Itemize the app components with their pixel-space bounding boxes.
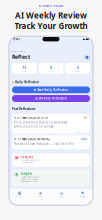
staticText: You felt prompted needing for (21, 176, 40, 178)
staticText: without burnout on Sunday. (14, 125, 54, 128)
button[interactable]: 21 Mar 2026 at 9:15 (12, 114, 90, 133)
staticText: Start Daily Reflection (37, 88, 68, 92)
staticText: Profile (80, 196, 85, 198)
staticText: Reflect (12, 53, 30, 60)
staticText: Day streak (47, 70, 55, 72)
button[interactable]: Patterns (12, 153, 90, 167)
staticText: MONDAY, 21 MARCH (12, 51, 25, 52)
staticText: Past Reflections (12, 107, 35, 111)
staticText: This week I had that push — I still feel… (14, 142, 74, 146)
staticText: Daily (84, 117, 87, 118)
staticText: 17 Mar 2026 at 08:02 (17, 137, 50, 141)
staticText: 11 (22, 65, 26, 70)
button[interactable]: Profile (72, 191, 93, 198)
staticText: Weekly (82, 138, 87, 140)
button[interactable]: 11 (12, 63, 37, 74)
button[interactable]: 17 Mar 2026 at 08:02 (12, 135, 90, 149)
staticText: Insights (75, 70, 80, 72)
staticText: 2 tags (82, 131, 86, 133)
staticText: didn't explain to your week. (21, 181, 38, 182)
staticText: 5 (50, 65, 52, 70)
staticText: Personal breaths. (21, 162, 34, 163)
staticText: Insights (21, 172, 32, 175)
staticText: Insights (58, 196, 64, 198)
staticText: 9:41 (13, 37, 20, 41)
staticText: 3 moods (75, 131, 81, 133)
staticText: AI Weekly Review (15, 10, 87, 21)
staticText: Daily Reflection (15, 80, 39, 84)
staticText: AI WEEKLY REVIEW (38, 4, 63, 7)
button[interactable]: Insights (12, 170, 90, 186)
staticText: Product-time sprints, marked (21, 159, 40, 161)
staticText: Journal (17, 196, 22, 198)
staticText: Weekly Reflection (39, 97, 67, 100)
button[interactable]: 5 (39, 63, 63, 74)
staticText: 3 (77, 65, 79, 70)
button[interactable]: Reflect (30, 191, 51, 198)
staticText: Track Your Growth (14, 21, 87, 31)
button[interactable]: Insights (51, 191, 72, 198)
button[interactable]: Weekly Reflection (12, 95, 90, 102)
button[interactable]: Journal (9, 191, 30, 198)
button[interactable]: Profile (84, 54, 90, 60)
staticText: identifying your spots. But it (21, 178, 37, 180)
staticText: Entries (22, 70, 27, 72)
staticText: Patterns (21, 155, 33, 159)
button[interactable]: 3 (65, 63, 90, 74)
staticText: 21 Mar 2026 at 9:15 (17, 116, 48, 119)
staticText: Reflect (37, 196, 43, 198)
button[interactable]: Start Daily Reflection (12, 86, 90, 93)
staticText: Keep protecting that deep-work space (14, 121, 68, 124)
